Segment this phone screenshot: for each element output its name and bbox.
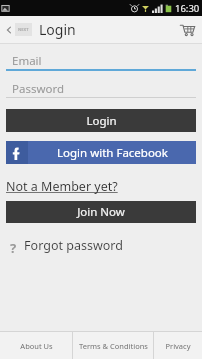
- staticText: Privacy: [165, 341, 191, 351]
- button[interactable]: Back: [3, 23, 34, 36]
- staticText: NEXT: [18, 27, 29, 32]
- staticText: 16:30: [175, 2, 200, 15]
- staticText: Forgot password: [24, 237, 123, 254]
- button[interactable]: ?: [6, 237, 123, 254]
- staticText: Login with Facebook: [57, 145, 168, 161]
- staticText: Not a Member yet?: [6, 178, 118, 195]
- staticText: ?: [10, 239, 17, 253]
- staticText: Password: [12, 81, 65, 97]
- button[interactable]: Email: [6, 52, 196, 71]
- button[interactable]: Login with Facebook: [6, 141, 196, 164]
- staticText: About Us: [20, 341, 53, 351]
- button[interactable]: Login: [6, 109, 196, 132]
- button[interactable]: Privacy: [154, 332, 202, 359]
- staticText: Terms & Conditions: [79, 341, 148, 351]
- button[interactable]: Cart: [172, 16, 202, 43]
- button[interactable]: About Us: [0, 332, 72, 359]
- button[interactable]: Join Now: [6, 201, 196, 223]
- staticText: Login: [86, 113, 117, 129]
- staticText: Join Now: [77, 204, 125, 220]
- button[interactable]: Password: [6, 80, 196, 98]
- button[interactable]: Terms & Conditions: [73, 332, 153, 359]
- staticText: Login: [39, 20, 76, 39]
- staticText: Email: [12, 53, 42, 69]
